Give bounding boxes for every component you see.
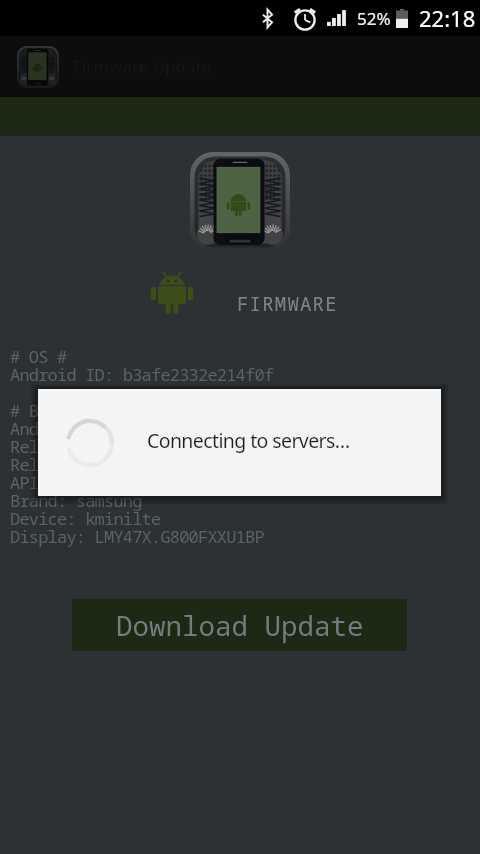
button[interactable]: Up [17,46,59,88]
staticText: Download Update [116,607,364,644]
button[interactable]: Download Update [72,599,407,651]
staticText: Connecting to servers… [147,427,350,454]
staticText: 22:18 [419,3,476,33]
other: Loading [65,418,115,468]
staticText: # OS # Android ID: b3afe2332e214f0f # Bu… [10,345,274,548]
staticText: FIRMWARE [237,291,338,317]
staticText: 52% [357,7,391,30]
